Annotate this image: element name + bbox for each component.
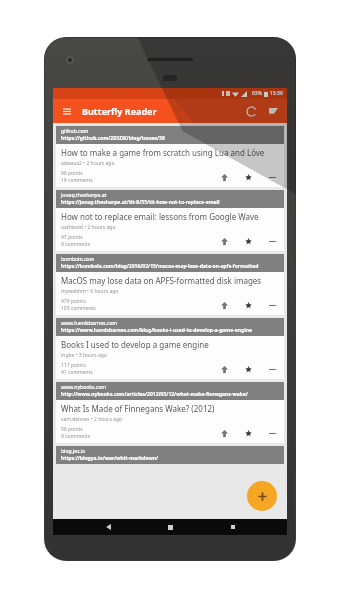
staticText: 9 comments — [61, 433, 91, 440]
staticText: 117 points — [61, 362, 86, 369]
button[interactable]: github.com — [56, 126, 284, 187]
button[interactable]: More options — [265, 234, 279, 248]
staticText: 479 points — [61, 298, 86, 305]
staticText: Books I used to develop a game engine — [61, 339, 209, 350]
button[interactable]: Save — [241, 234, 255, 248]
staticText: How not to replace email: lessons from G… — [61, 211, 259, 222]
staticText: How to make a game from scratch using Lu… — [61, 147, 265, 158]
staticText: 56 points — [61, 426, 83, 433]
staticText: 103 comments — [61, 305, 96, 312]
button[interactable]: Home — [162, 519, 178, 535]
staticText: 19 comments — [61, 177, 93, 184]
staticText: 41 comments — [61, 369, 93, 376]
staticText: https://blogya.io/war/whit-markdown/ — [61, 455, 159, 462]
button[interactable]: Add — [247, 481, 277, 511]
staticText: 96 points — [61, 170, 83, 177]
staticText: sam.dennes • 2 hours ago — [61, 416, 123, 423]
button[interactable]: Save — [241, 298, 255, 312]
staticText: www.handsbarnes.com — [61, 320, 118, 327]
staticText: github.com — [61, 128, 89, 135]
staticText: bomboin.com — [61, 256, 95, 263]
button[interactable]: jonaq.thesharpe.at — [56, 190, 284, 251]
staticText: Butterfly Reader — [82, 105, 157, 117]
staticText: adwaus2 • 2 hours ago — [61, 160, 115, 167]
button[interactable]: bomboin.com — [56, 254, 284, 315]
button[interactable]: More options — [265, 426, 279, 440]
staticText: 9 comments — [61, 241, 91, 248]
button[interactable]: Upvote — [217, 362, 231, 376]
staticText: https://jonay.thesharpe.at/tit-8/55/tit-… — [61, 199, 220, 206]
staticText: ingbe • 3 hours ago — [61, 352, 107, 359]
staticText: 15:39 — [270, 90, 283, 97]
staticText: What Is Made of Finnegans Wake? (2012) — [61, 403, 215, 414]
button[interactable]: More options — [265, 298, 279, 312]
button[interactable]: Filter — [266, 104, 280, 118]
button[interactable]: More options — [265, 362, 279, 376]
staticText: blog.jez.io — [61, 448, 86, 455]
button[interactable]: Upvote — [217, 234, 231, 248]
button[interactable]: Back — [100, 519, 116, 535]
staticText: oathivoid • 2 hours ago — [61, 224, 116, 231]
button[interactable]: More options — [265, 170, 279, 184]
button[interactable]: Upvote — [217, 298, 231, 312]
button[interactable]: Upvote — [217, 170, 231, 184]
staticText: https://github.com/2DSDK/blog/issues/38 — [61, 135, 165, 142]
staticText: https://bombola.com/blog/2016/02/15/maco… — [61, 263, 259, 270]
button[interactable]: www.handsbarnes.com — [56, 318, 284, 379]
button[interactable]: Recent apps — [225, 519, 241, 535]
staticText: jonaq.thesharpe.at — [61, 192, 107, 199]
button[interactable]: Save — [241, 170, 255, 184]
staticText: https://www.handsbarnes.com/blog/books-i… — [61, 327, 252, 334]
button[interactable]: Refresh — [244, 104, 258, 118]
staticText: 47 points — [61, 234, 83, 241]
button[interactable]: Open navigation drawer — [60, 104, 74, 118]
staticText: www.nybooks.com — [61, 384, 107, 391]
button[interactable]: Save — [241, 362, 255, 376]
staticText: MacOS may lose data on APFS-formatted di… — [61, 275, 262, 286]
button[interactable]: www.nybooks.com — [56, 382, 284, 443]
staticText: mywebhm • 6 hours ago — [61, 288, 119, 295]
staticText: http://www.nybooks.com/articles/2012/05/… — [61, 391, 248, 398]
button[interactable]: Upvote — [217, 426, 231, 440]
button[interactable]: Save — [241, 426, 255, 440]
button[interactable]: blog.jez.io — [56, 446, 284, 464]
staticText: 63% — [252, 90, 262, 97]
